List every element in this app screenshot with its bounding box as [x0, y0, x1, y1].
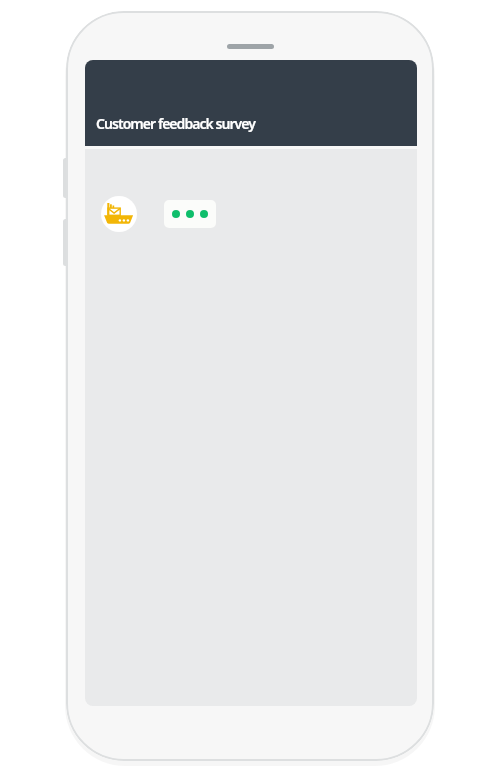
- button[interactable]: Customer feedback survey: [85, 60, 417, 146]
- button[interactable]: [164, 200, 216, 228]
- button[interactable]: [101, 196, 137, 232]
- staticText: Customer feedback survey: [96, 114, 255, 133]
